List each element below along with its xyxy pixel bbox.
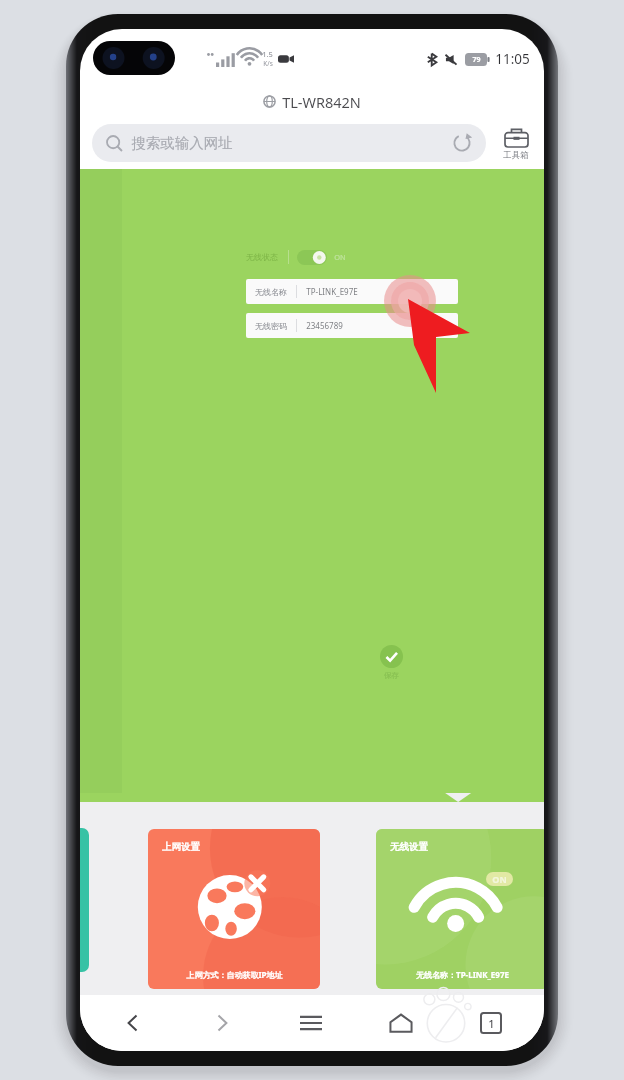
button[interactable]: 上网设置	[148, 829, 320, 989]
button[interactable]: Tabs	[446, 995, 536, 1051]
staticText: 无线名称	[255, 287, 287, 297]
staticText: 11:05	[495, 50, 530, 68]
staticText: 保存	[384, 671, 399, 680]
staticText: TP-LINK_E97E	[306, 286, 358, 297]
button[interactable]: 无线名称	[246, 279, 458, 304]
staticText: 1	[488, 1016, 495, 1031]
button[interactable]: Wireless toggle	[297, 250, 327, 265]
staticText: 上网设置	[162, 841, 200, 853]
button[interactable]: 无线密码	[246, 313, 458, 338]
staticText: 搜索或输入网址	[131, 134, 233, 152]
button[interactable]: Refresh	[452, 133, 472, 153]
staticText: 79	[472, 55, 481, 65]
button[interactable]: Previous card	[80, 828, 89, 972]
button[interactable]: Home	[356, 995, 446, 1051]
staticText: 上网方式：自动获取IP地址	[186, 969, 283, 980]
button[interactable]: Forward	[177, 995, 266, 1051]
staticText: 无线状态	[246, 252, 278, 262]
button[interactable]: 无线设置	[376, 829, 544, 989]
staticText: ON	[334, 252, 346, 262]
staticText: 无线密码	[255, 321, 287, 331]
staticText: 23456789	[306, 320, 343, 331]
button[interactable]: Back	[88, 995, 177, 1051]
button[interactable]: 保存	[380, 645, 403, 680]
staticText: 工具箱	[503, 150, 529, 161]
staticText: 无线名称：TP-LINK_E97E	[416, 969, 509, 980]
staticText: ON	[492, 873, 507, 885]
staticText: K/s	[263, 59, 273, 68]
staticText: TL-WR842N	[282, 92, 361, 112]
button[interactable]: 搜索或输入网址	[92, 124, 486, 162]
staticText: 无线设置	[390, 841, 428, 853]
button[interactable]: Menu	[266, 995, 356, 1051]
button[interactable]: 工具箱	[494, 117, 538, 169]
staticText: 1.5	[262, 49, 273, 59]
